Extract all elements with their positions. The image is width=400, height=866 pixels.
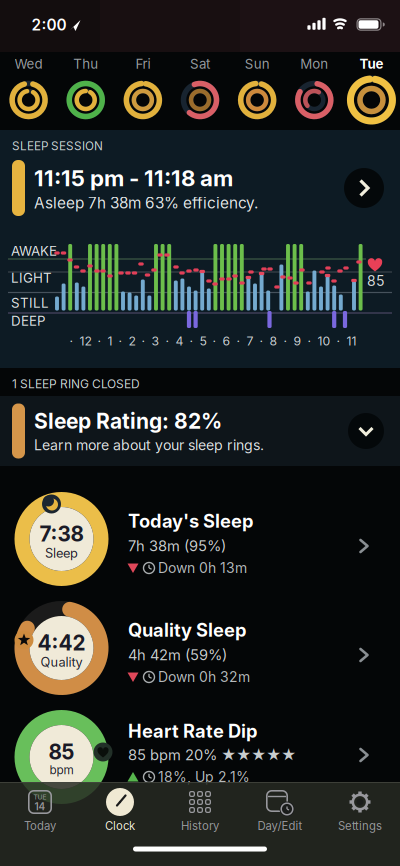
button[interactable]: Heart Rate Dip (0, 704, 400, 810)
button[interactable]: Wed (1, 53, 57, 129)
button[interactable]: Today (4, 788, 76, 842)
staticText: 4:42 (37, 630, 85, 656)
staticText: 7:38 (39, 521, 83, 547)
staticText: Sat (190, 56, 210, 72)
staticText: SLEEP SESSION (12, 139, 103, 153)
staticText: Down 0h 13m (158, 559, 247, 576)
staticText: 85 (367, 272, 385, 289)
staticText: · 12 · 1 · 2 · 3 · 4 · 5 · 6 · 7 · 8 · 9… (69, 334, 356, 348)
staticText: Clock (105, 819, 135, 833)
staticText: DEEP (11, 313, 46, 329)
staticText: Learn more about your sleep rings. (34, 436, 264, 453)
button[interactable]: Sat (172, 53, 228, 129)
staticText: Mon (300, 56, 328, 72)
staticText: Day/Edit (257, 819, 302, 833)
staticText: LIGHT (11, 270, 52, 286)
staticText: 14 (34, 800, 45, 813)
staticText: 85 (48, 739, 74, 765)
button[interactable]: Tue (343, 53, 399, 129)
button[interactable]: Expand sleep rating (8, 400, 392, 462)
staticText: AWAKE (11, 243, 57, 259)
staticText: History (181, 819, 219, 833)
staticText: Sleep Rating: 82% (34, 408, 222, 434)
staticText: 11:15 pm - 11:18 am (34, 164, 233, 191)
staticText: Tue (359, 56, 383, 72)
staticText: Settings (338, 819, 382, 833)
staticText: Today's Sleep (128, 510, 254, 532)
staticText: 18%, Up 2.1% (158, 768, 250, 785)
button[interactable]: Sleep session details (8, 155, 392, 221)
staticText: Down 0h 32m (158, 668, 250, 685)
button[interactable]: Clock (84, 788, 156, 842)
button[interactable]: Quality Sleep (0, 595, 400, 701)
staticText: Asleep 7h 38m 63% efficiency. (34, 194, 258, 212)
staticText: Sun (245, 56, 270, 72)
staticText: Quality (40, 654, 82, 670)
staticText: 7h 38m (95%) (128, 537, 226, 555)
button[interactable]: History (164, 788, 236, 842)
staticText: 4h 42m (59%) (128, 646, 227, 664)
button[interactable]: Sun (229, 53, 285, 129)
button[interactable]: Fri (115, 53, 171, 129)
button[interactable]: Mon (286, 53, 342, 129)
staticText: Wed (15, 56, 43, 72)
staticText: bpm (49, 763, 73, 777)
staticText: Heart Rate Dip (128, 720, 258, 742)
staticText: Quality Sleep (128, 619, 247, 641)
staticText: TUE (33, 793, 46, 801)
button[interactable]: Today's Sleep (0, 486, 400, 592)
staticText: Today (24, 819, 56, 833)
button[interactable]: Day/Edit (244, 788, 316, 842)
staticText: Fri (135, 56, 150, 72)
staticText: Sleep (45, 545, 78, 561)
button[interactable]: Thu (58, 53, 114, 129)
staticText: 1 SLEEP RING CLOSED (12, 377, 140, 391)
staticText: 85 bpm 20% ★★★★★ (128, 746, 296, 764)
staticText: 2:00 (31, 16, 66, 34)
staticText: Thu (73, 56, 98, 72)
staticText: STILL (11, 295, 49, 311)
button[interactable]: Settings (324, 788, 396, 842)
